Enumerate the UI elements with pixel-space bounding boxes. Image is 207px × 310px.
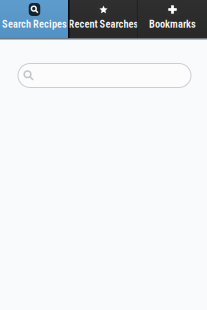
button[interactable]: Search Recipes bbox=[0, 0, 69, 38]
staticText: Bookmarks bbox=[149, 18, 196, 30]
staticText: Search Recipes bbox=[2, 18, 67, 30]
button[interactable]: Bookmarks bbox=[138, 0, 207, 38]
button[interactable]: Recent Searches bbox=[69, 0, 138, 38]
staticText: Recent Searches bbox=[68, 18, 138, 30]
button[interactable] bbox=[18, 63, 191, 87]
